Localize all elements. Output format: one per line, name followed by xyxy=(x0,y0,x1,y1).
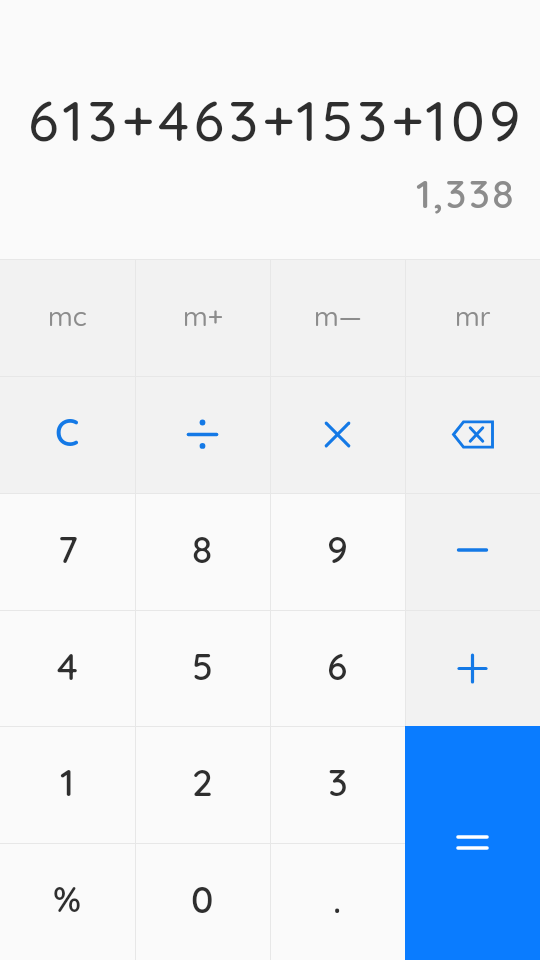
staticText: . xyxy=(333,876,342,922)
button[interactable]: 3 xyxy=(270,726,405,843)
button[interactable]: mc xyxy=(0,259,135,376)
staticText: 8 xyxy=(192,526,213,572)
staticText: 1,338 xyxy=(416,169,517,218)
button[interactable]: 2 xyxy=(135,726,270,843)
button[interactable]: Plus xyxy=(405,610,540,727)
button[interactable]: C xyxy=(0,376,135,493)
staticText: mc xyxy=(48,299,87,333)
button[interactable]: 5 xyxy=(135,610,270,727)
button[interactable]: 7 xyxy=(0,493,135,610)
button[interactable]: 9 xyxy=(270,493,405,610)
staticText: C xyxy=(55,408,80,456)
button[interactable]: % xyxy=(0,843,135,960)
staticText: 0 xyxy=(191,876,214,922)
button[interactable]: m— xyxy=(270,259,405,376)
button[interactable]: . xyxy=(270,843,405,960)
staticText: 3 xyxy=(328,759,348,805)
button[interactable]: 0 xyxy=(135,843,270,960)
button[interactable]: Divide xyxy=(135,376,270,493)
staticText: % xyxy=(53,877,82,921)
staticText: m— xyxy=(314,299,362,333)
staticText: 2 xyxy=(192,759,213,805)
staticText: mr xyxy=(455,299,491,333)
button[interactable]: m+ xyxy=(135,259,270,376)
button[interactable]: mr xyxy=(405,259,540,376)
staticText: 4 xyxy=(57,643,78,689)
staticText: m+ xyxy=(183,299,223,333)
staticText: 1 xyxy=(60,759,75,805)
button[interactable]: 8 xyxy=(135,493,270,610)
staticText: 6 xyxy=(327,643,348,689)
button[interactable]: Equals xyxy=(405,726,540,960)
button[interactable]: Backspace xyxy=(405,376,540,493)
button[interactable]: 4 xyxy=(0,610,135,727)
staticText: 7 xyxy=(58,526,78,572)
button[interactable]: 6 xyxy=(270,610,405,727)
button[interactable]: Multiply xyxy=(270,376,405,493)
staticText: 9 xyxy=(327,526,348,572)
staticText: 5 xyxy=(192,643,213,689)
button[interactable]: 1 xyxy=(0,726,135,843)
button[interactable]: Minus xyxy=(405,493,540,610)
staticText: 613+463+153+109 xyxy=(28,85,525,155)
